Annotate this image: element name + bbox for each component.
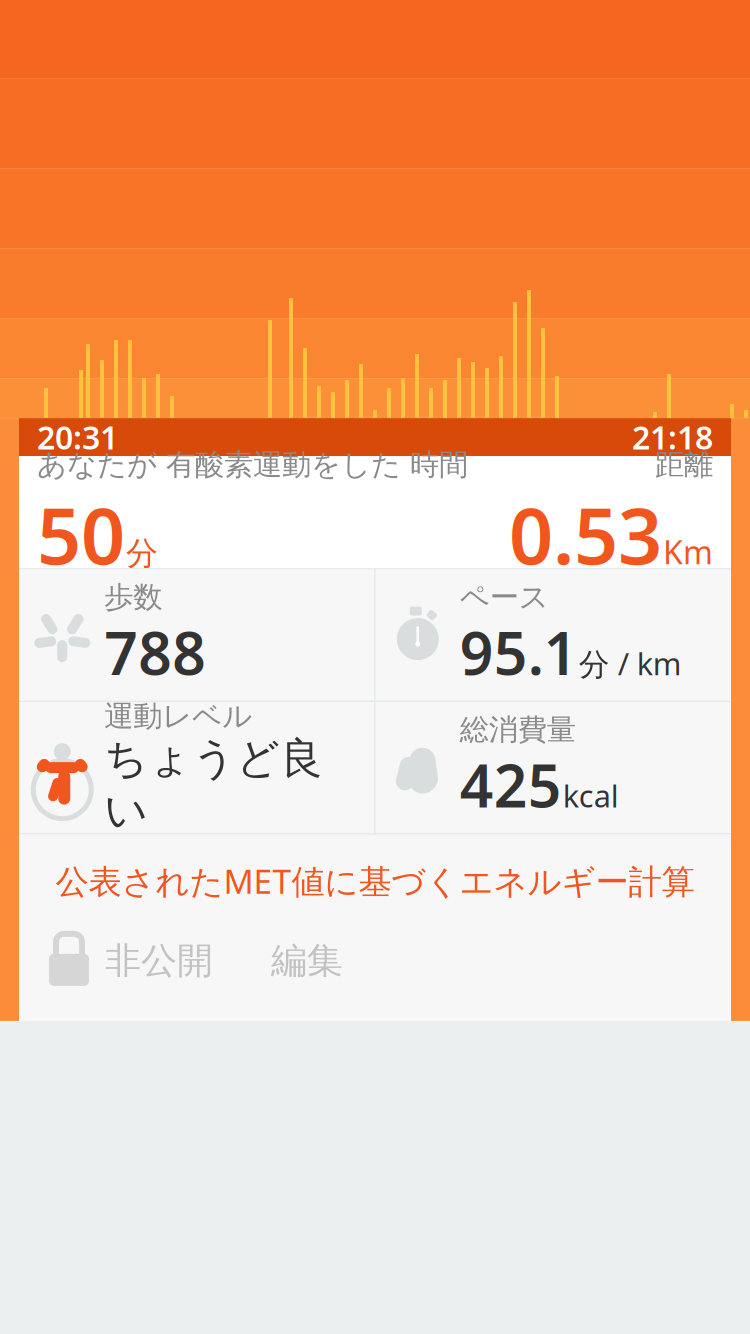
- staticText: 距離: [655, 447, 713, 483]
- staticText: 50: [37, 483, 125, 585]
- staticText: Km: [663, 530, 713, 573]
- staticText: 公表されたMET値に基づくエネルギー計算: [55, 859, 694, 903]
- staticText: 総消費量: [460, 712, 576, 748]
- staticText: あなたが 有酸素運動をした 時間: [37, 447, 468, 483]
- staticText: kcal: [563, 775, 619, 816]
- staticText: 788: [104, 613, 206, 691]
- staticText: 21:18: [632, 416, 713, 458]
- staticText: 20:31: [37, 416, 118, 458]
- staticText: 425: [460, 746, 562, 824]
- staticText: 運動レベル: [104, 698, 252, 734]
- staticText: 歩数: [104, 579, 162, 615]
- button[interactable]: 非公開: [19, 927, 213, 995]
- staticText: 編集: [271, 939, 343, 983]
- staticText: 95.1: [460, 613, 578, 691]
- staticText: 分 / km: [579, 643, 682, 684]
- staticText: ペース: [460, 579, 549, 615]
- staticText: ちょうど良い: [104, 732, 323, 837]
- button[interactable]: 編集: [271, 931, 343, 991]
- staticText: 0.53: [509, 483, 662, 585]
- button[interactable]: 公表されたMET値に基づくエネルギー計算: [19, 835, 731, 927]
- staticText: 分: [126, 534, 158, 573]
- staticText: 非公開: [105, 939, 213, 983]
